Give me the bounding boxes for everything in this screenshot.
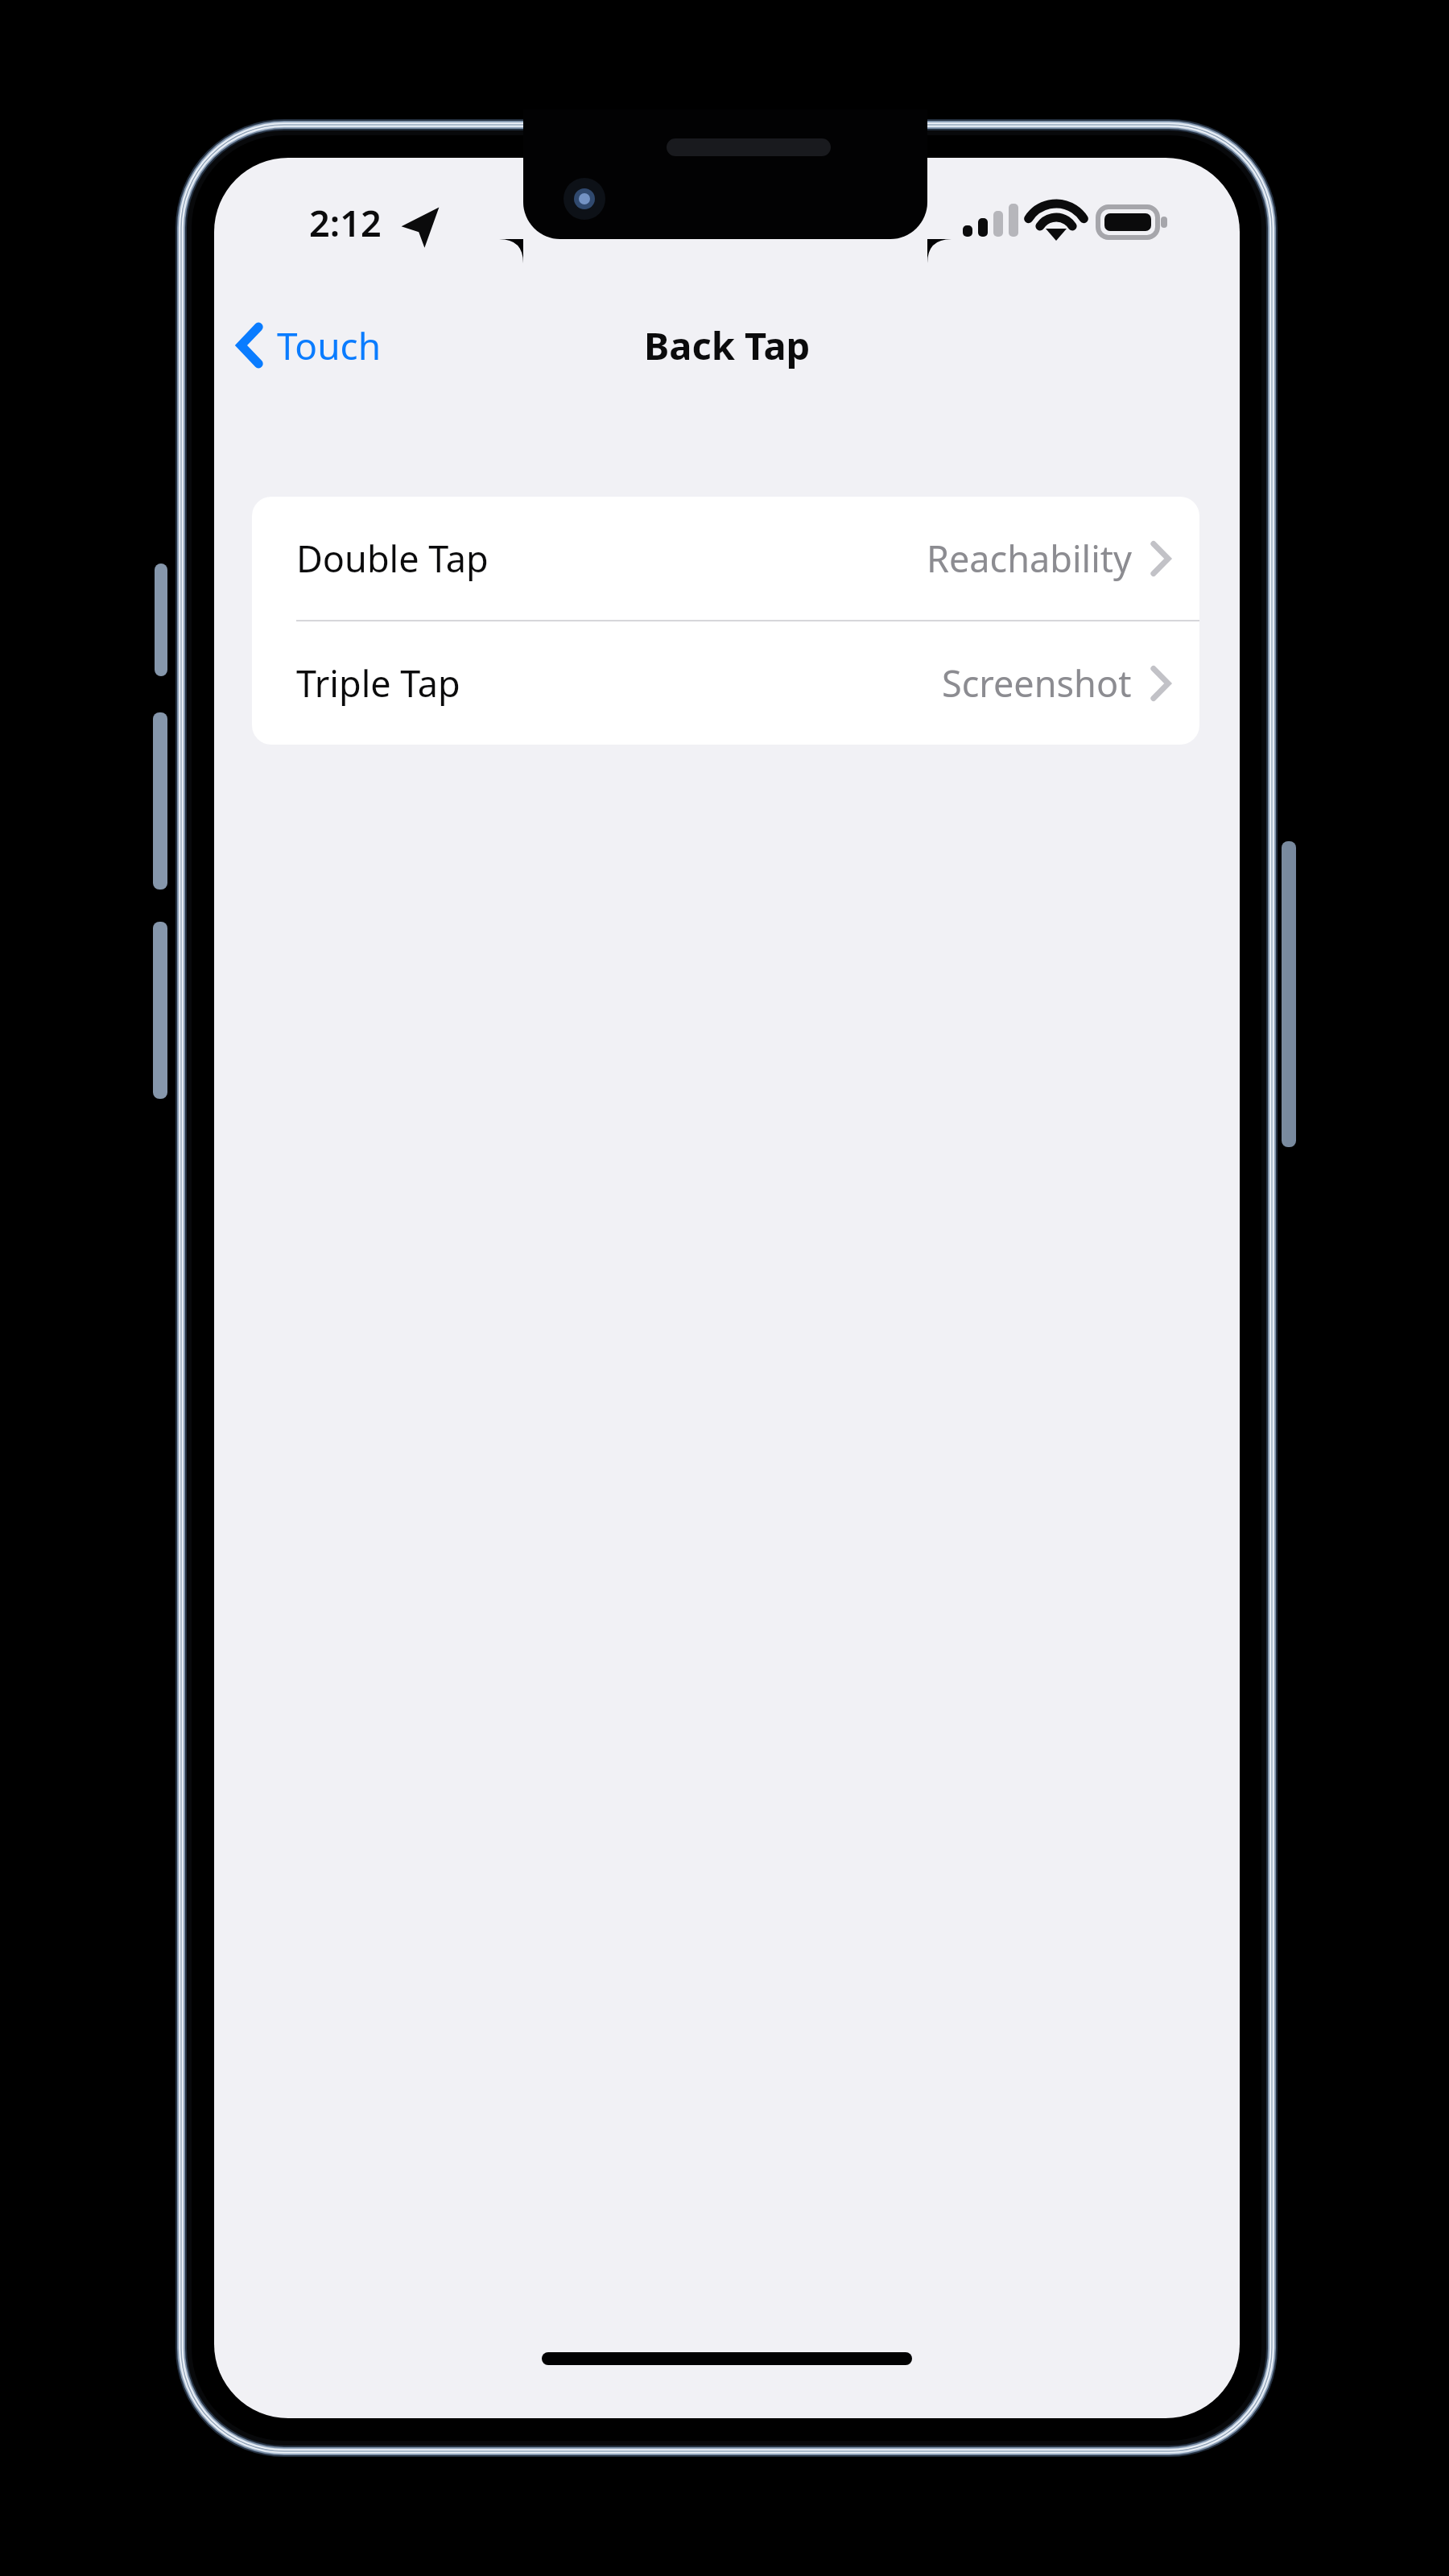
staticText: Reachability — [927, 534, 1132, 583]
other: Open Triple Tap options — [1151, 667, 1170, 700]
staticText: Screenshot — [942, 658, 1132, 708]
staticText: Triple Tap — [296, 658, 460, 708]
staticText: Double Tap — [296, 534, 489, 583]
staticText: Back Tap — [644, 320, 811, 371]
staticText: 2:12 — [309, 198, 382, 247]
other: Open Double Tap options — [1151, 542, 1170, 576]
button[interactable]: Triple Tap — [252, 621, 1199, 745]
staticText: Touch — [277, 320, 382, 371]
button[interactable]: Double Tap — [252, 497, 1199, 620]
button[interactable]: Touch — [232, 309, 386, 382]
